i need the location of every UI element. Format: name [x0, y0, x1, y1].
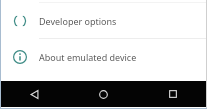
- staticText: About emulated device: [39, 51, 137, 63]
- button[interactable]: Developer options: [0, 4, 207, 38]
- staticText: Developer options: [39, 15, 117, 27]
- button[interactable]: Recent apps: [138, 81, 207, 107]
- button[interactable]: Home: [69, 81, 138, 107]
- button[interactable]: About emulated device: [0, 39, 207, 75]
- button[interactable]: Back: [0, 81, 69, 107]
